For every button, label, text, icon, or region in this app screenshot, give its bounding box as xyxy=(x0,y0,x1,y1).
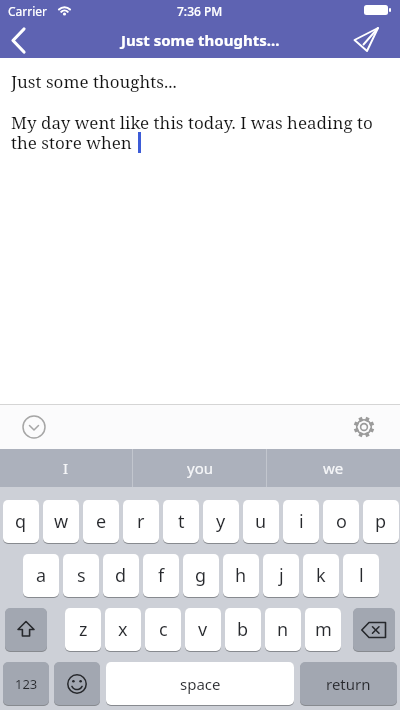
button[interactable]: t xyxy=(163,500,199,544)
button[interactable]: Just some thoughts... xyxy=(121,30,280,50)
staticText: m xyxy=(315,617,332,642)
button[interactable]: r xyxy=(123,500,159,544)
staticText: we xyxy=(323,458,344,478)
button[interactable]: 123 xyxy=(3,662,49,706)
button[interactable]: l xyxy=(343,554,379,598)
button[interactable]: a xyxy=(23,554,59,598)
button[interactable]: p xyxy=(363,500,399,544)
staticText: t xyxy=(178,509,185,534)
button[interactable]: d xyxy=(103,554,139,598)
button[interactable]: h xyxy=(223,554,259,598)
staticText: v xyxy=(198,617,208,642)
button[interactable]: you xyxy=(133,449,266,487)
button[interactable]: o xyxy=(323,500,359,544)
button[interactable]: f xyxy=(143,554,179,598)
button[interactable]: x xyxy=(105,608,141,652)
button[interactable] xyxy=(54,662,100,706)
button[interactable]: c xyxy=(145,608,181,652)
button[interactable]: g xyxy=(183,554,219,598)
staticText: y xyxy=(216,509,226,534)
staticText: return xyxy=(326,674,371,694)
button[interactable] xyxy=(5,608,47,652)
button[interactable] xyxy=(354,21,400,58)
button[interactable] xyxy=(353,608,395,652)
button[interactable]: y xyxy=(203,500,239,544)
staticText: 123 xyxy=(15,675,38,693)
staticText: a xyxy=(36,563,47,588)
staticText: k xyxy=(316,563,326,588)
staticText: c xyxy=(159,617,168,642)
button[interactable]: k xyxy=(303,554,339,598)
staticText: g xyxy=(195,563,207,588)
button[interactable]: b xyxy=(225,608,261,652)
button[interactable]: w xyxy=(43,500,79,544)
staticText: d xyxy=(115,563,127,588)
staticText: u xyxy=(255,509,267,534)
staticText: Just some thoughts... xyxy=(121,30,280,50)
staticText: Just some thoughts... xyxy=(11,70,177,93)
staticText: j xyxy=(279,563,284,588)
staticText: o xyxy=(336,509,347,534)
button[interactable]: e xyxy=(83,500,119,544)
staticText: you xyxy=(187,458,213,478)
button[interactable] xyxy=(0,22,36,58)
staticText: I xyxy=(63,458,69,478)
staticText: b xyxy=(237,617,249,642)
button[interactable] xyxy=(22,415,46,439)
staticText: n xyxy=(277,617,289,642)
button[interactable]: space xyxy=(106,662,294,706)
button[interactable]: i xyxy=(283,500,319,544)
button[interactable]: s xyxy=(63,554,99,598)
staticText: h xyxy=(235,563,247,588)
staticText: e xyxy=(96,509,107,534)
button[interactable]: return xyxy=(300,662,397,706)
staticText: p xyxy=(375,509,387,534)
button[interactable]: q xyxy=(3,500,39,544)
button[interactable] xyxy=(352,415,376,439)
button[interactable]: we xyxy=(267,449,400,487)
staticText: w xyxy=(54,509,69,534)
staticText: My day went like this today. I was headi… xyxy=(11,111,373,154)
staticText: r xyxy=(137,509,145,534)
staticText: space xyxy=(180,674,221,694)
staticText: z xyxy=(79,617,88,642)
button[interactable]: m xyxy=(305,608,341,652)
staticText: x xyxy=(118,617,128,642)
button[interactable]: u xyxy=(243,500,279,544)
button[interactable]: I xyxy=(0,449,132,487)
staticText: i xyxy=(299,509,304,534)
button[interactable]: z xyxy=(65,608,101,652)
staticText: l xyxy=(359,563,364,588)
staticText: s xyxy=(77,563,86,588)
staticText: Carrier xyxy=(8,3,48,19)
staticText: q xyxy=(15,509,27,534)
staticText: 7:36 PM xyxy=(177,3,223,19)
button[interactable]: v xyxy=(185,608,221,652)
staticText: f xyxy=(158,563,165,588)
button[interactable]: n xyxy=(265,608,301,652)
button[interactable]: j xyxy=(263,554,299,598)
